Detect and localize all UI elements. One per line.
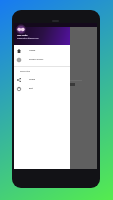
staticText: Urdu Poetry	[17, 34, 28, 36]
button[interactable]: Share	[14, 75, 70, 84]
button[interactable]: Privacy Policy	[14, 55, 70, 64]
staticText: Home	[29, 49, 36, 52]
button[interactable]: Exit	[14, 84, 70, 93]
staticText: urdupoetry4u@gmail.com	[17, 37, 39, 39]
staticText: Share	[29, 78, 35, 81]
staticText: Privacy Policy	[29, 58, 44, 61]
staticText: Application	[20, 70, 31, 72]
button[interactable]: Home	[14, 46, 70, 55]
staticText: Exit	[29, 87, 33, 90]
